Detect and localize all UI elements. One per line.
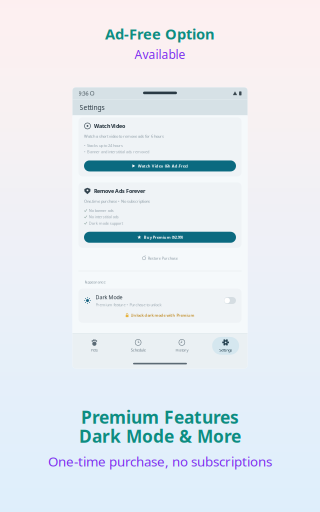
staticText: Pets [91, 347, 98, 353]
button[interactable]: Watch Video (6h Ad-Free) [84, 160, 236, 171]
button[interactable]: Schedule [116, 337, 160, 355]
staticText: Premium feature • Purchase to unlock [95, 302, 161, 307]
staticText: Buy Premium ($2.99) [144, 235, 183, 240]
staticText: Schedule [131, 347, 146, 353]
staticText: Settings [219, 347, 232, 353]
button[interactable]: Restore Purchase [72, 254, 247, 263]
staticText: Dark mode support [89, 220, 123, 226]
staticText: Appearance [84, 279, 105, 285]
staticText: Restore Purchase [148, 256, 178, 261]
staticText: • Banner and interstitial ads removed [84, 149, 149, 154]
staticText: • Stacks up to 24 hours [84, 143, 123, 148]
staticText: Remove Ads Forever [94, 187, 145, 194]
staticText: History [175, 347, 188, 353]
staticText: Dark Mode [95, 294, 122, 301]
staticText: No banner ads [89, 208, 114, 213]
button[interactable]: History [160, 337, 204, 355]
staticText: Ad-Free Option [105, 24, 215, 43]
staticText: One-time purchase, no subscriptions [48, 452, 272, 470]
button[interactable]: Pets [72, 337, 116, 355]
staticText: Watch Video (6h Ad-Free) [138, 163, 188, 169]
staticText: Premium Features [81, 405, 239, 428]
staticText: Dark Mode & More [79, 424, 241, 447]
button[interactable]: Buy Premium ($2.99) [84, 232, 236, 243]
staticText: Settings [79, 103, 104, 112]
staticText: Available [134, 46, 185, 62]
staticText: 9:36 [78, 90, 88, 97]
staticText: Watch Video [94, 122, 125, 129]
staticText: Unlock dark mode with Premium [131, 312, 195, 318]
staticText: Watch a short video to remove ads for 6 … [84, 133, 164, 139]
staticText: One-time purchase • No subscriptions [84, 198, 150, 204]
button[interactable]: Settings [204, 337, 248, 355]
staticText: No interstitial ads [89, 214, 119, 219]
